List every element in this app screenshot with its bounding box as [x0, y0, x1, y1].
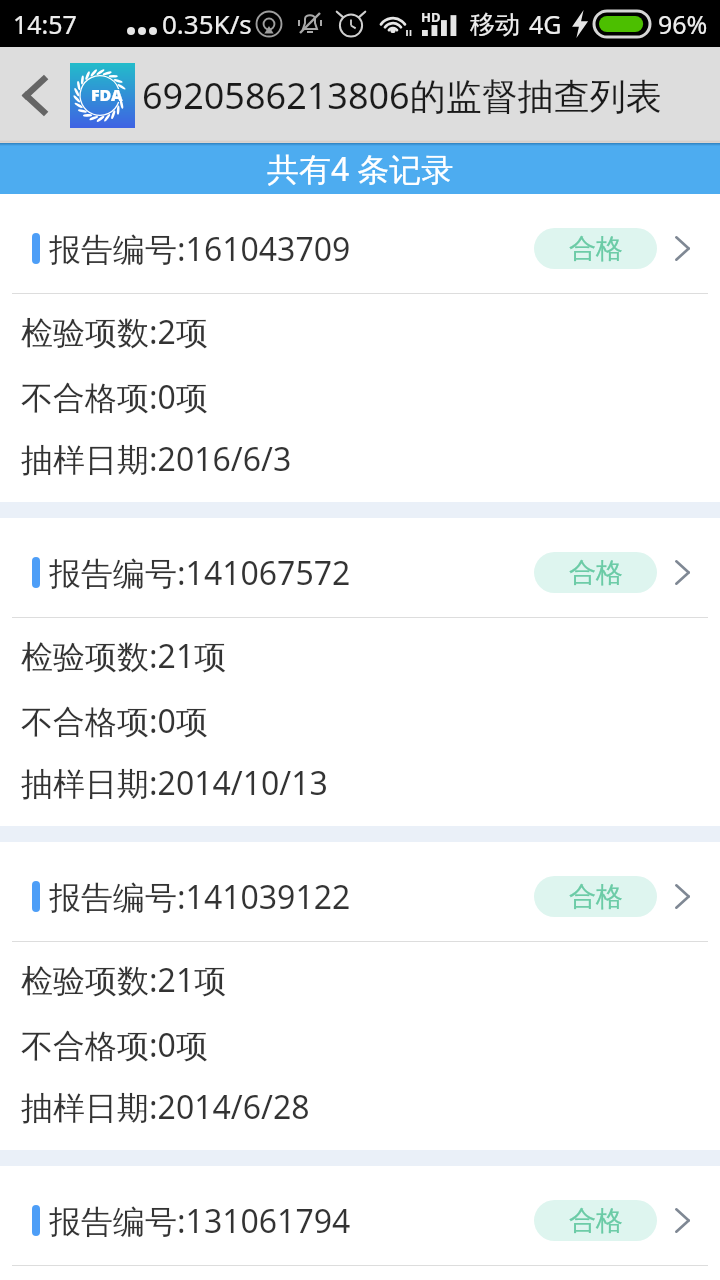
button[interactable]: Open report details	[675, 236, 690, 261]
button[interactable]: 报告编号:141039122	[0, 842, 720, 1150]
staticText: HD	[421, 8, 441, 26]
staticText: 不合格项:0项	[21, 1023, 208, 1067]
staticText: 合格	[569, 1204, 623, 1238]
staticText: FDA	[91, 84, 123, 106]
staticText: 4G	[529, 7, 562, 41]
button[interactable]: Open report details	[675, 560, 690, 585]
staticText: 0.35K/s	[162, 6, 252, 41]
button[interactable]: Open report details	[675, 884, 690, 909]
staticText: 14:57	[13, 7, 77, 41]
button[interactable]: 报告编号:131061794	[0, 1166, 720, 1280]
staticText: 检验项数:21项	[21, 634, 227, 678]
staticText: 合格	[569, 556, 623, 590]
staticText: 不合格项:0项	[21, 699, 208, 743]
staticText: 检验项数:21项	[21, 958, 227, 1002]
staticText: 报告编号:161043709	[49, 227, 351, 271]
button[interactable]: Back	[0, 47, 70, 143]
staticText: 报告编号:141067572	[49, 551, 351, 595]
button[interactable]: 报告编号:141067572	[0, 518, 720, 826]
staticText: 不合格项:0项	[21, 375, 208, 419]
staticText: 报告编号:131061794	[49, 1199, 351, 1243]
button[interactable]: 报告编号:161043709	[0, 194, 720, 502]
staticText: 抽样日期:2014/10/13	[21, 761, 328, 805]
staticText: 抽样日期:2014/6/28	[21, 1085, 310, 1129]
staticText: 合格	[569, 232, 623, 266]
staticText: 移动	[470, 9, 520, 40]
staticText: 合格	[569, 880, 623, 914]
staticText: 报告编号:141039122	[49, 875, 351, 919]
staticText: 检验项数:2项	[21, 310, 208, 354]
staticText: 6920586213806的监督抽查列表	[142, 71, 662, 120]
button[interactable]: Open report details	[675, 1208, 690, 1233]
staticText: 抽样日期:2016/6/3	[21, 437, 292, 481]
staticText: 96%	[658, 7, 708, 41]
staticText: 共有4 条记录	[267, 147, 454, 191]
